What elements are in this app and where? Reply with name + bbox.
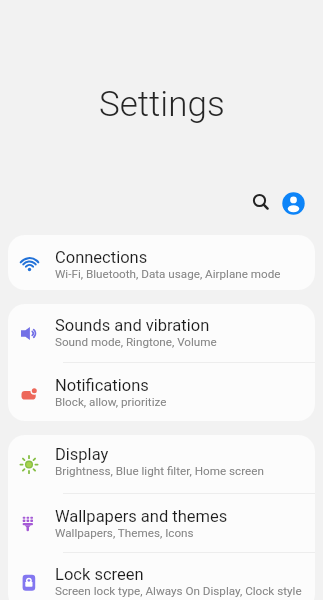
staticText: Sound mode, Ringtone, Volume [55,335,217,349]
staticText: Wallpapers, Themes, Icons [55,526,194,540]
staticText: Brightness, Blue light filter, Home scre… [55,464,264,478]
staticText: Wallpapers and themes [55,507,228,526]
button[interactable]: Display [8,435,315,493]
staticText: Settings [99,84,225,125]
staticText: Wi-Fi, Bluetooth, Data usage, Airplane m… [55,267,281,281]
staticText: Lock screen [55,565,144,584]
staticText: Screen lock type, Always On Display, Clo… [55,584,302,598]
staticText: Notifications [55,376,149,395]
button[interactable] [282,192,305,215]
staticText: Sounds and vibration [55,316,210,335]
staticText: Connections [55,248,148,267]
button[interactable]: Lock screen [8,553,315,600]
staticText: Display [55,445,109,464]
button[interactable]: Wallpapers and themes [8,494,315,552]
staticText: Block, allow, prioritize [55,395,167,409]
button[interactable]: Connections [8,235,315,290]
button[interactable]: Notifications [8,363,315,421]
button[interactable]: Sounds and vibration [8,304,315,362]
button[interactable] [248,189,272,213]
